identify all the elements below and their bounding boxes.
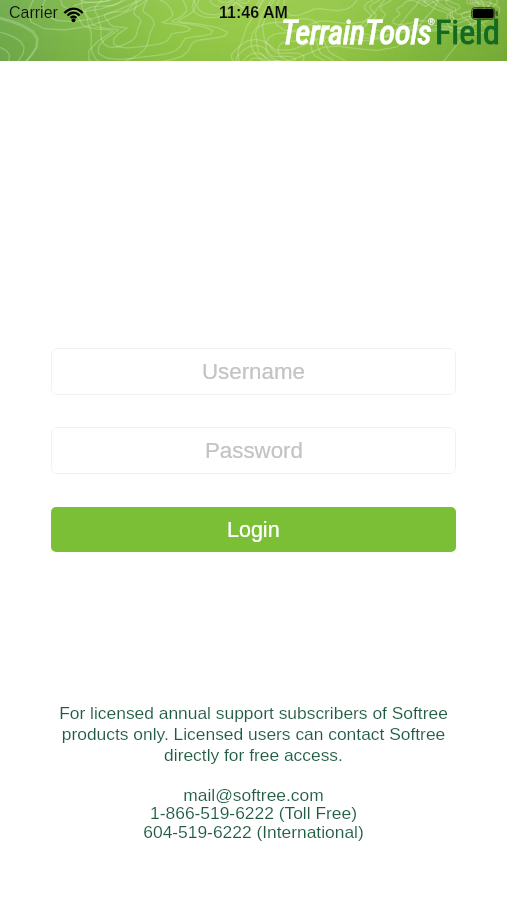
staticText: Field — [435, 12, 500, 52]
staticText: mail@softree.com 1-866-519-6222 (Toll Fr… — [143, 785, 364, 842]
staticText: TerrainTools — [281, 12, 431, 52]
other: Battery full — [471, 7, 498, 20]
button[interactable]: Login — [51, 507, 456, 552]
staticText: For licensed annual support subscribers … — [59, 703, 448, 765]
other: WiFi signal — [63, 6, 84, 21]
staticText: Username — [202, 359, 305, 384]
staticText: Carrier — [9, 4, 58, 22]
staticText: ® — [428, 17, 435, 27]
staticText: Login — [227, 518, 280, 542]
staticText: Password — [205, 438, 303, 463]
button[interactable]: Password — [51, 427, 456, 474]
staticText: 11:46 AM — [219, 4, 288, 22]
button[interactable]: Username — [51, 348, 456, 395]
